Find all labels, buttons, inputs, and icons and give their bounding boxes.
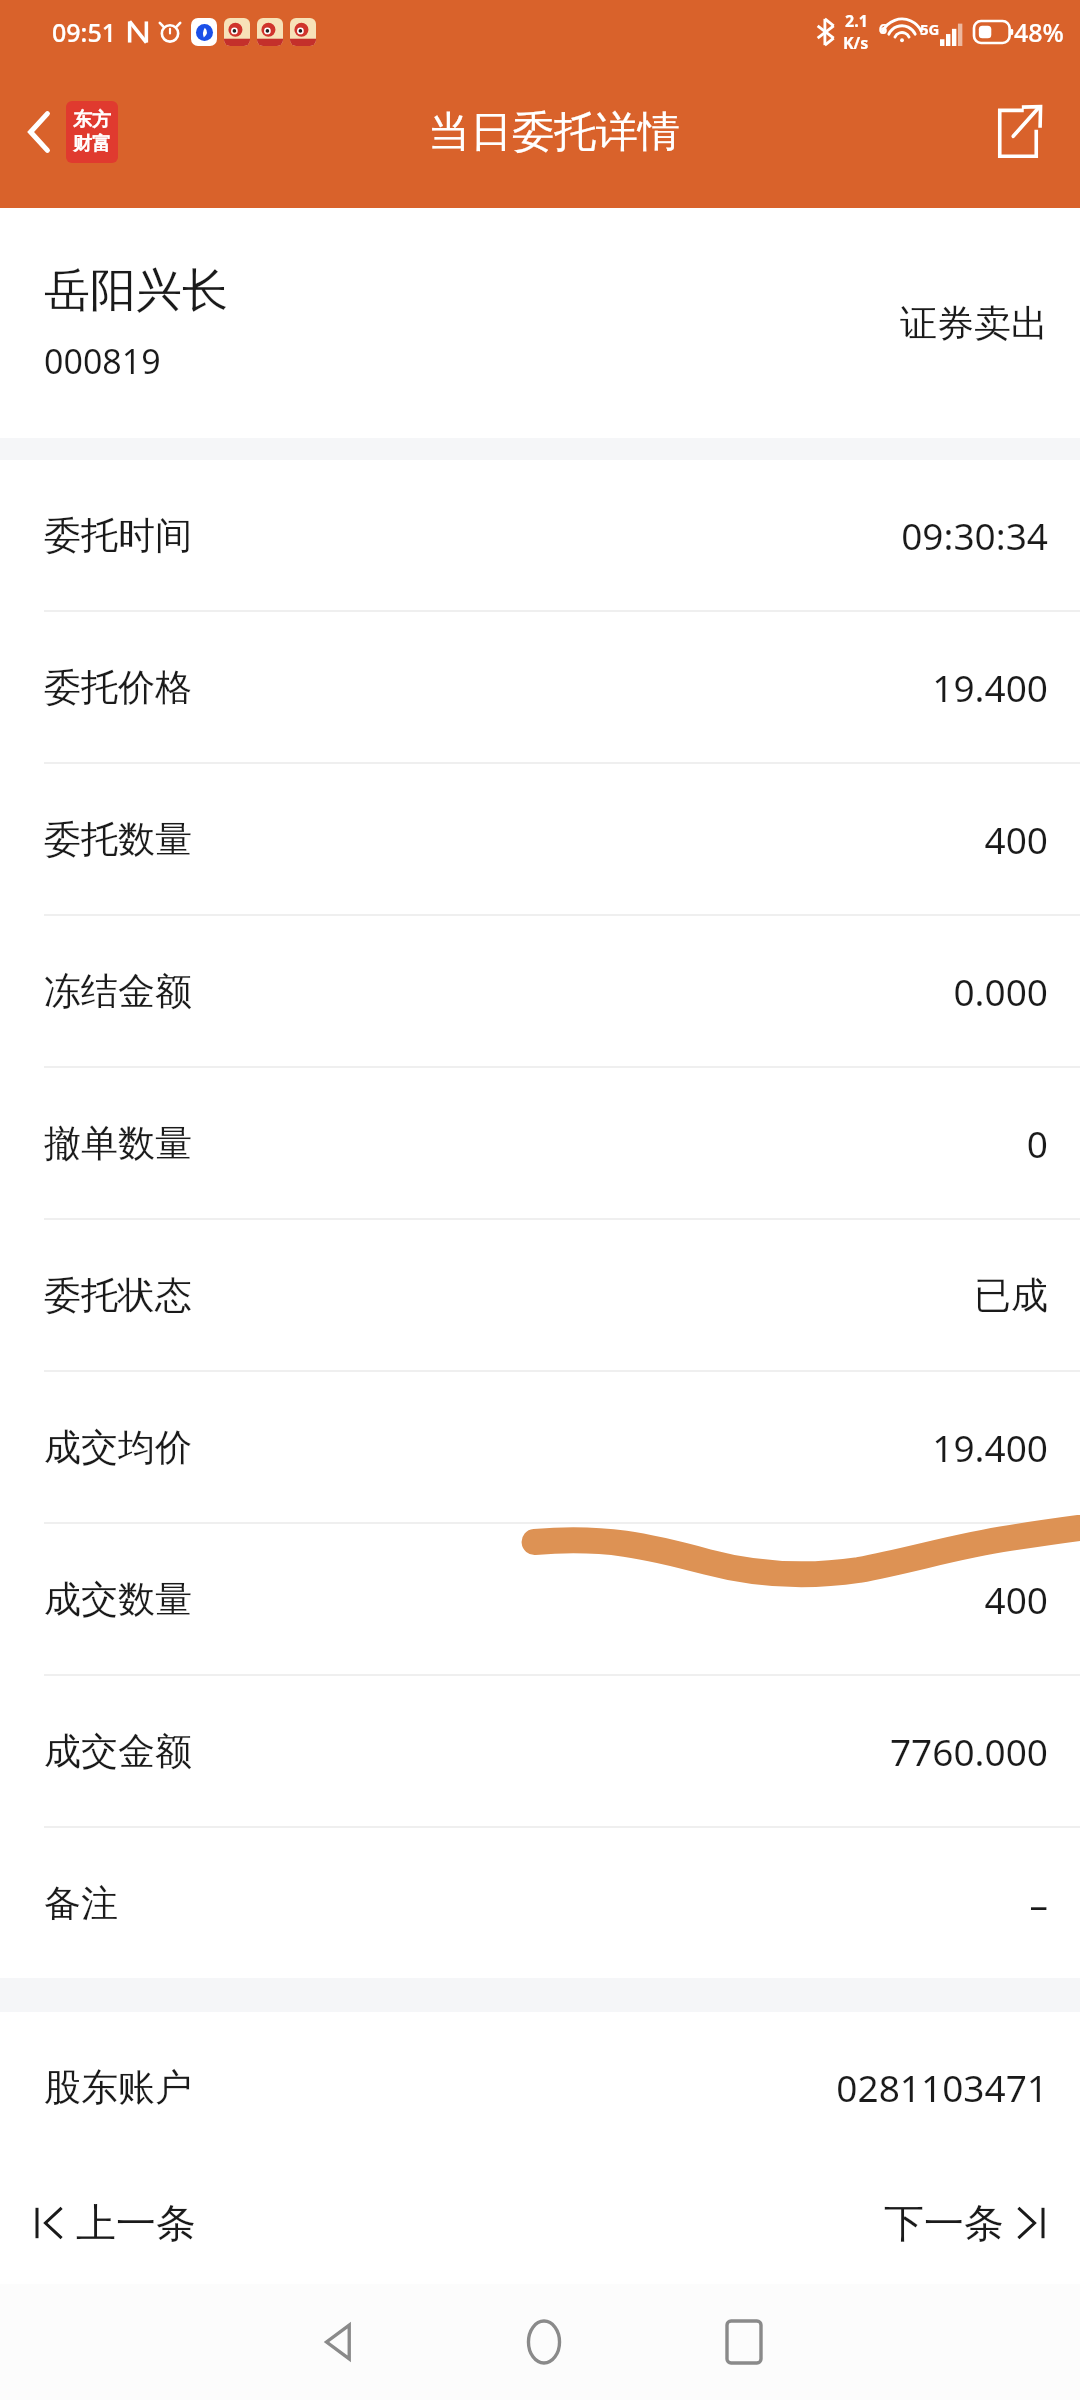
button[interactable]: 委托价格 — [0, 612, 1080, 762]
staticText: 0 — [1026, 1118, 1048, 1168]
button[interactable]: 上一条 — [0, 2184, 216, 2262]
staticText: 19.400 — [932, 662, 1048, 712]
staticText: 备注 — [44, 1880, 118, 1927]
staticText: 上一条 — [76, 2198, 196, 2248]
staticText: 成交均价 — [44, 1424, 192, 1471]
staticText: 400 — [984, 814, 1048, 864]
staticText: 已成 — [974, 1272, 1048, 1319]
button[interactable]: 成交数量 — [0, 1524, 1080, 1674]
staticText: 当日委托详情 — [428, 106, 680, 159]
staticText: 东方 — [73, 108, 111, 132]
button[interactable]: 股东账户 — [0, 2012, 1080, 2162]
staticText: 19.400 — [932, 1422, 1048, 1472]
staticText: 成交数量 — [44, 1576, 192, 1623]
staticText: 000819 — [44, 338, 161, 384]
staticText: 400 — [984, 1574, 1048, 1624]
button[interactable]: 备注 — [0, 1828, 1080, 1978]
staticText: 委托价格 — [44, 664, 192, 711]
staticText: 财富 — [73, 132, 111, 156]
staticText: 证券卖出 — [900, 300, 1048, 347]
staticText: 2.1 — [845, 10, 868, 32]
button[interactable]: Home — [471, 2299, 617, 2385]
staticText: 下一条 — [884, 2198, 1004, 2248]
staticText: 委托数量 — [44, 816, 192, 863]
button[interactable]: Back to 东方财富 — [18, 91, 124, 173]
staticText: 09:30:34 — [901, 510, 1048, 560]
button[interactable]: 岳阳兴长 — [0, 208, 1080, 438]
staticText: 0.000 — [953, 966, 1048, 1016]
staticText: 0281103471 — [836, 2062, 1048, 2112]
button[interactable]: 成交均价 — [0, 1372, 1080, 1522]
button[interactable]: 委托数量 — [0, 764, 1080, 914]
button[interactable]: 委托状态 — [0, 1220, 1080, 1370]
staticText: 岳阳兴长 — [44, 262, 228, 320]
button[interactable]: Share — [984, 95, 1052, 169]
button[interactable]: 成交金额 — [0, 1676, 1080, 1826]
button[interactable]: 撤单数量 — [0, 1068, 1080, 1218]
button[interactable]: Recent apps — [675, 2299, 813, 2385]
staticText: 6 — [879, 19, 888, 38]
button[interactable]: 委托时间 — [0, 460, 1080, 610]
staticText: K/s — [843, 32, 869, 54]
staticText: 09:51 — [52, 15, 117, 49]
staticText: 成交金额 — [44, 1728, 192, 1775]
staticText: – — [1029, 1878, 1048, 1928]
staticText: 股东账户 — [44, 2064, 192, 2111]
staticText: 撤单数量 — [44, 1120, 192, 1167]
staticText: 委托状态 — [44, 1272, 192, 1319]
staticText: 委托时间 — [44, 512, 192, 559]
staticText: 5G — [920, 19, 940, 39]
staticText: 7760.000 — [889, 1726, 1048, 1776]
staticText: 48% — [1014, 15, 1064, 49]
button[interactable]: Back — [267, 2299, 413, 2385]
staticText: 冻结金额 — [44, 968, 192, 1015]
button[interactable]: 冻结金额 — [0, 916, 1080, 1066]
button[interactable]: 下一条 — [864, 2184, 1080, 2262]
